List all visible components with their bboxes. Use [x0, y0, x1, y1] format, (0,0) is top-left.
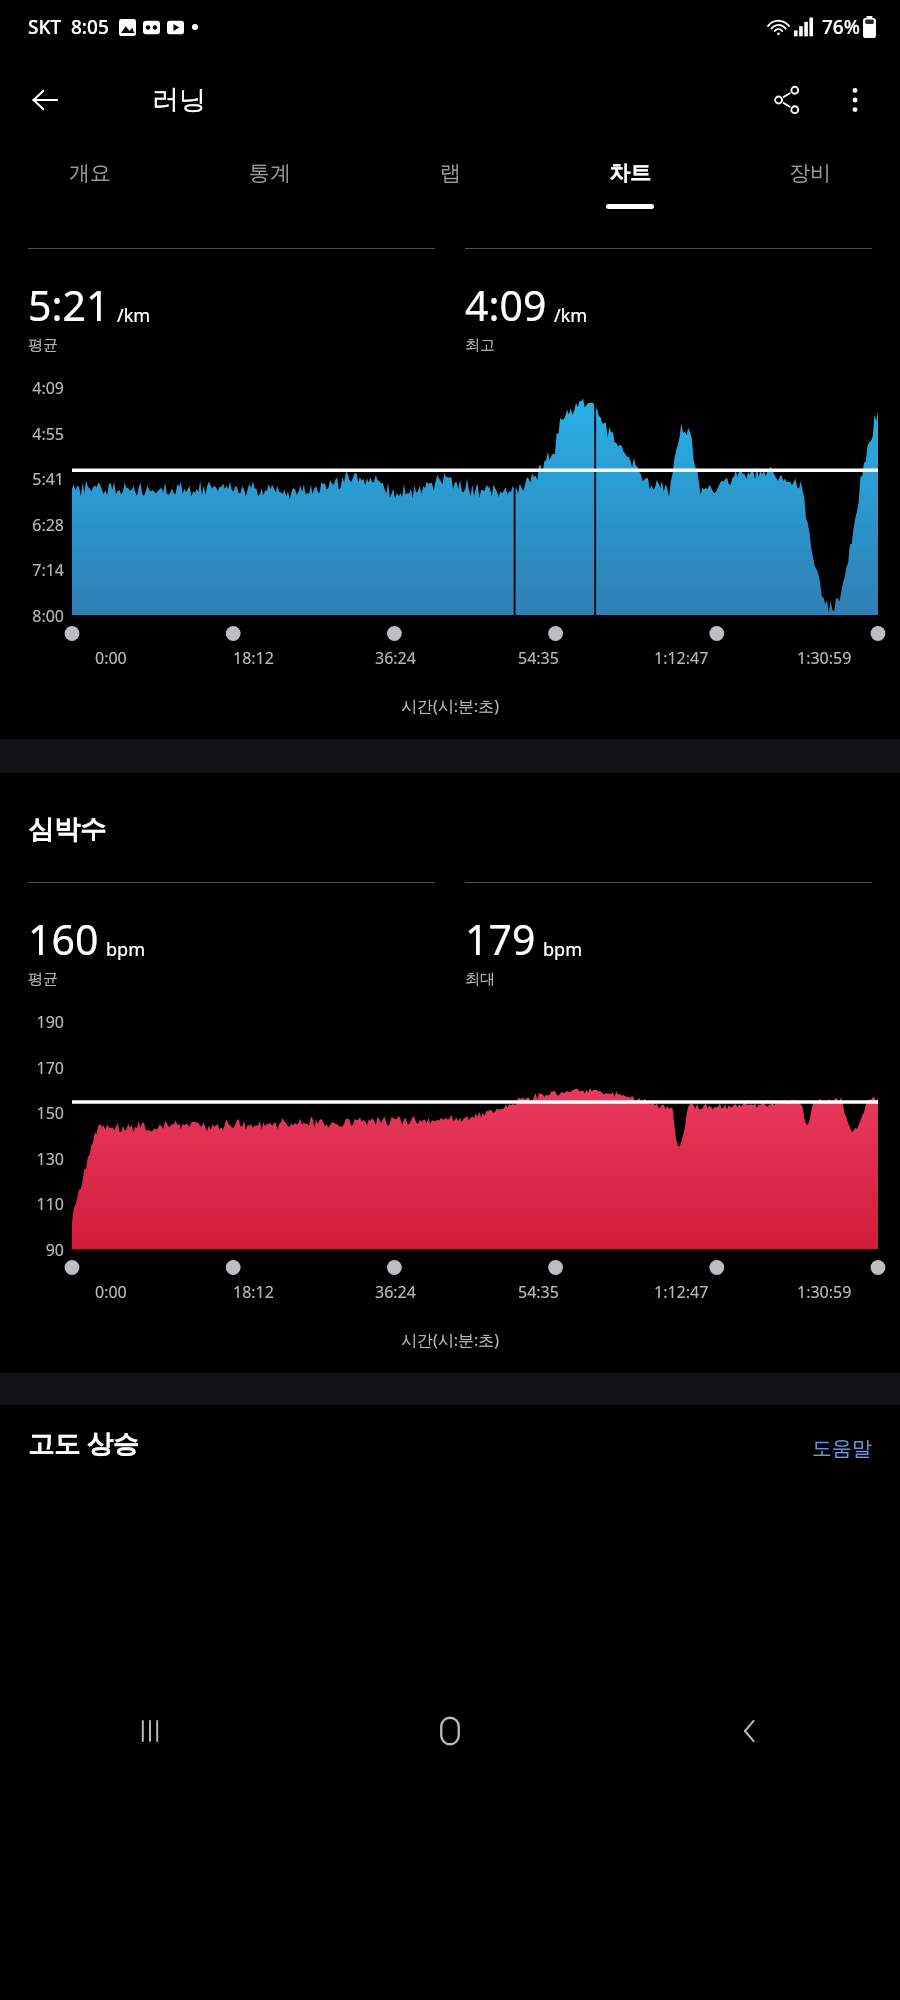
- staticText: 개요: [69, 160, 111, 186]
- button[interactable]: 차트: [540, 146, 720, 232]
- button[interactable]: More options: [828, 73, 882, 127]
- staticText: 8:00: [18, 605, 64, 627]
- staticText: 150: [18, 1102, 64, 1124]
- staticText: 5:21: [28, 277, 110, 333]
- staticText: 통계: [249, 160, 291, 186]
- button[interactable]: 통계: [180, 146, 360, 232]
- staticText: SKT: [28, 14, 62, 40]
- staticText: 130: [18, 1148, 64, 1170]
- staticText: 36:24: [375, 1281, 416, 1303]
- staticText: 랩: [440, 160, 461, 186]
- staticText: 차트: [609, 160, 651, 186]
- staticText: 8:05: [71, 14, 109, 40]
- staticText: /km: [117, 303, 151, 328]
- staticText: 0:00: [95, 647, 127, 669]
- staticText: 4:09: [18, 377, 64, 399]
- staticText: 심박수: [28, 813, 106, 846]
- staticText: bpm: [543, 937, 582, 962]
- staticText: 110: [18, 1193, 64, 1215]
- staticText: 18:12: [233, 647, 274, 669]
- staticText: 장비: [789, 160, 831, 186]
- button[interactable]: Share: [760, 73, 814, 127]
- staticText: 76%: [822, 14, 860, 40]
- staticText: 최대: [465, 970, 495, 989]
- button[interactable]: Recent apps: [0, 1695, 300, 1767]
- button[interactable]: 개요: [0, 146, 180, 232]
- staticText: 1:30:59: [797, 647, 852, 669]
- staticText: 5:41: [18, 468, 64, 490]
- staticText: 4:09: [465, 277, 547, 333]
- staticText: 1:30:59: [797, 1281, 852, 1303]
- staticText: 1:12:47: [654, 1281, 709, 1303]
- staticText: 190: [18, 1011, 64, 1033]
- button[interactable]: Back: [600, 1695, 900, 1767]
- button[interactable]: 도움말: [812, 1436, 872, 1461]
- staticText: 평균: [28, 336, 58, 355]
- staticText: 90: [18, 1239, 64, 1261]
- button[interactable]: Home: [300, 1695, 600, 1767]
- staticText: 36:24: [375, 647, 416, 669]
- staticText: 179: [465, 911, 536, 967]
- staticText: 시간(시:분:초): [0, 695, 900, 717]
- staticText: 54:35: [518, 1281, 559, 1303]
- staticText: 도움말: [812, 1436, 872, 1461]
- staticText: 170: [18, 1057, 64, 1079]
- staticText: 평균: [28, 970, 58, 989]
- staticText: 6:28: [18, 514, 64, 536]
- staticText: 54:35: [518, 647, 559, 669]
- staticText: 160: [28, 911, 99, 967]
- staticText: 최고: [465, 336, 495, 355]
- button[interactable]: Back: [18, 73, 72, 127]
- staticText: /km: [554, 303, 588, 328]
- staticText: 0:00: [95, 1281, 127, 1303]
- button[interactable]: 장비: [720, 146, 900, 232]
- staticText: bpm: [106, 937, 145, 962]
- staticText: 18:12: [233, 1281, 274, 1303]
- staticText: 1:12:47: [654, 647, 709, 669]
- button[interactable]: 랩: [360, 146, 540, 232]
- staticText: 7:14: [18, 559, 64, 581]
- staticText: 시간(시:분:초): [0, 1329, 900, 1351]
- staticText: 4:55: [18, 423, 64, 445]
- staticText: 고도 상승: [28, 1425, 139, 1461]
- staticText: 러닝: [152, 83, 206, 117]
